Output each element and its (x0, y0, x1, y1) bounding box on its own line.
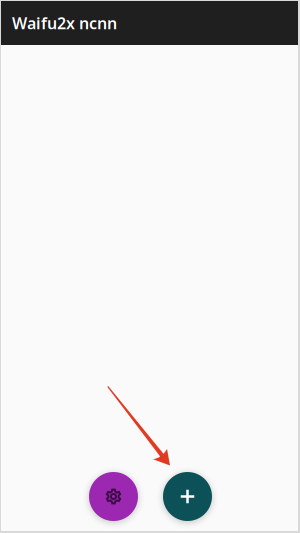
staticText: Waifu2x ncnn (12, 12, 117, 34)
button[interactable]: Add (163, 472, 212, 521)
button[interactable]: Settings (89, 472, 138, 521)
